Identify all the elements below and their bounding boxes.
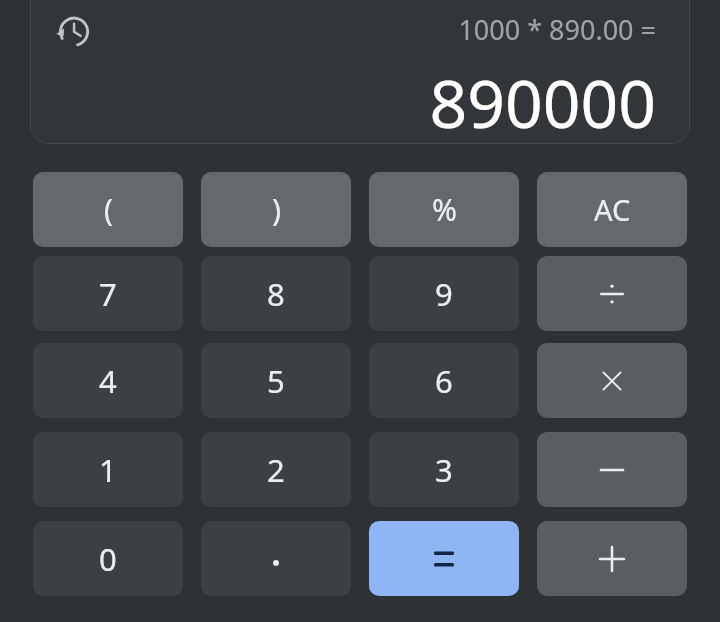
button[interactable]: 0 bbox=[33, 521, 183, 596]
button[interactable]: 8 bbox=[201, 256, 351, 331]
staticText: 6 bbox=[435, 360, 453, 402]
button[interactable]: 7 bbox=[33, 256, 183, 331]
staticText: 0 bbox=[99, 538, 117, 580]
button[interactable]: Divide bbox=[537, 256, 687, 331]
staticText: ) bbox=[272, 189, 281, 230]
button[interactable]: 9 bbox=[369, 256, 519, 331]
staticText: 3 bbox=[435, 449, 453, 491]
button[interactable]: ) bbox=[201, 172, 351, 247]
staticText: 2 bbox=[267, 449, 285, 491]
button[interactable]: 4 bbox=[33, 343, 183, 418]
button[interactable]: Multiply bbox=[537, 343, 687, 418]
staticText: AC bbox=[594, 190, 631, 229]
staticText: 9 bbox=[435, 273, 453, 315]
staticText: 7 bbox=[99, 273, 117, 315]
button[interactable]: 6 bbox=[369, 343, 519, 418]
button[interactable]: ( bbox=[33, 172, 183, 247]
staticText: % bbox=[432, 189, 457, 230]
button[interactable]: 5 bbox=[201, 343, 351, 418]
staticText: ( bbox=[104, 189, 113, 230]
button[interactable]: 3 bbox=[369, 432, 519, 507]
staticText: 5 bbox=[267, 360, 285, 402]
staticText: 890000 bbox=[429, 57, 656, 147]
button[interactable]: Decimal point bbox=[201, 521, 351, 596]
button[interactable]: 2 bbox=[201, 432, 351, 507]
button[interactable]: Equals bbox=[369, 521, 519, 596]
staticText: 1000 * 890.00 = bbox=[458, 11, 656, 48]
button[interactable]: Minus bbox=[537, 432, 687, 507]
button[interactable]: History bbox=[50, 9, 94, 53]
staticText: 4 bbox=[99, 360, 117, 402]
staticText: 1 bbox=[99, 449, 117, 491]
button[interactable]: % bbox=[369, 172, 519, 247]
button[interactable]: 1 bbox=[33, 432, 183, 507]
staticText: 8 bbox=[267, 273, 285, 315]
button[interactable]: Plus bbox=[537, 521, 687, 596]
button[interactable]: AC bbox=[537, 172, 687, 247]
